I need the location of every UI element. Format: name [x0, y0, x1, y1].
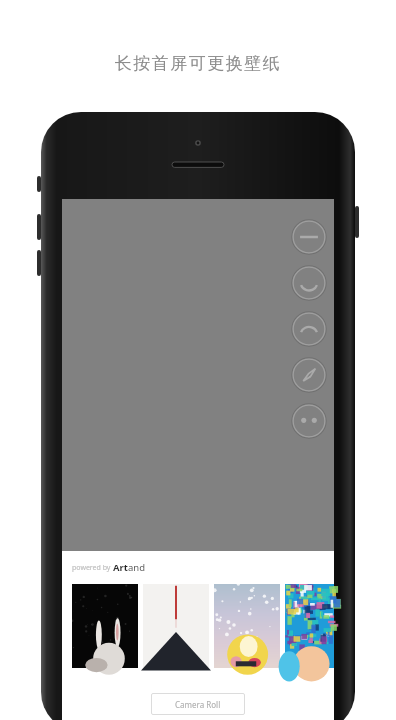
- button[interactable]: Artwork 4: [285, 584, 334, 668]
- staticText: 长按首屏可更换壁纸: [0, 53, 396, 74]
- staticText: Art: [113, 561, 128, 574]
- button[interactable]: Like: [289, 263, 329, 303]
- staticText: and: [128, 561, 146, 574]
- staticText: Camera Roll: [175, 699, 221, 710]
- staticText: powered by: [72, 563, 113, 573]
- button[interactable]: Hide wallpaper: [289, 217, 329, 257]
- button[interactable]: Artwork 2: [143, 584, 209, 668]
- button[interactable]: Camera Roll: [151, 693, 245, 715]
- button[interactable]: Artwork 3: [214, 584, 280, 668]
- button[interactable]: Explore: [289, 355, 329, 395]
- button[interactable]: Artwork 1: [72, 584, 138, 668]
- button[interactable]: More options: [289, 401, 329, 441]
- button[interactable]: Dislike: [289, 309, 329, 349]
